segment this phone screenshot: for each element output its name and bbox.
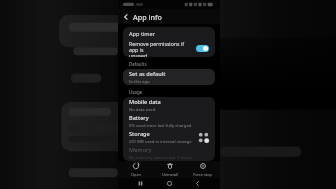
staticText: Usage (129, 89, 143, 95)
button[interactable]: Uninstall (154, 161, 185, 178)
staticText: Remove permissions if app is unused (129, 40, 193, 57)
staticText: Battery (129, 114, 149, 122)
button[interactable]: Recents (135, 178, 146, 189)
staticText: Mobile data (129, 98, 161, 106)
staticText: Open (131, 172, 141, 177)
staticText: App info (133, 12, 162, 22)
staticText: In this app (129, 79, 150, 85)
button[interactable]: Remove permissions toggle (196, 45, 209, 52)
button[interactable]: Battery (123, 113, 215, 129)
button[interactable]: Memory (123, 145, 215, 161)
staticText: Memory (129, 146, 152, 154)
button[interactable]: Set as default (123, 69, 215, 85)
staticText: Set as default (129, 70, 166, 78)
button[interactable]: App timer (123, 27, 215, 40)
staticText: Force stop (193, 172, 212, 177)
button[interactable]: Mobile data (123, 97, 215, 113)
button[interactable]: Back (118, 9, 133, 24)
staticText: 201 MB used in internal storage (129, 139, 192, 145)
staticText: App timer (129, 30, 156, 38)
button[interactable]: Storage (123, 129, 215, 145)
staticText: Defaults (129, 61, 147, 67)
staticText: Uninstall (162, 172, 178, 177)
staticText: 0% used since last fully charged (129, 123, 192, 129)
button[interactable]: Back (192, 178, 203, 189)
staticText: No memory used in last 3 hours (129, 155, 192, 161)
button[interactable]: Force stop (187, 161, 218, 178)
button[interactable]: Storage details (198, 132, 209, 143)
button[interactable]: Remove permissions if app is unused (123, 40, 215, 57)
staticText: No data used (129, 107, 156, 113)
button[interactable]: Open (120, 161, 151, 178)
staticText: Storage (129, 130, 150, 138)
button[interactable]: Home (164, 178, 175, 189)
